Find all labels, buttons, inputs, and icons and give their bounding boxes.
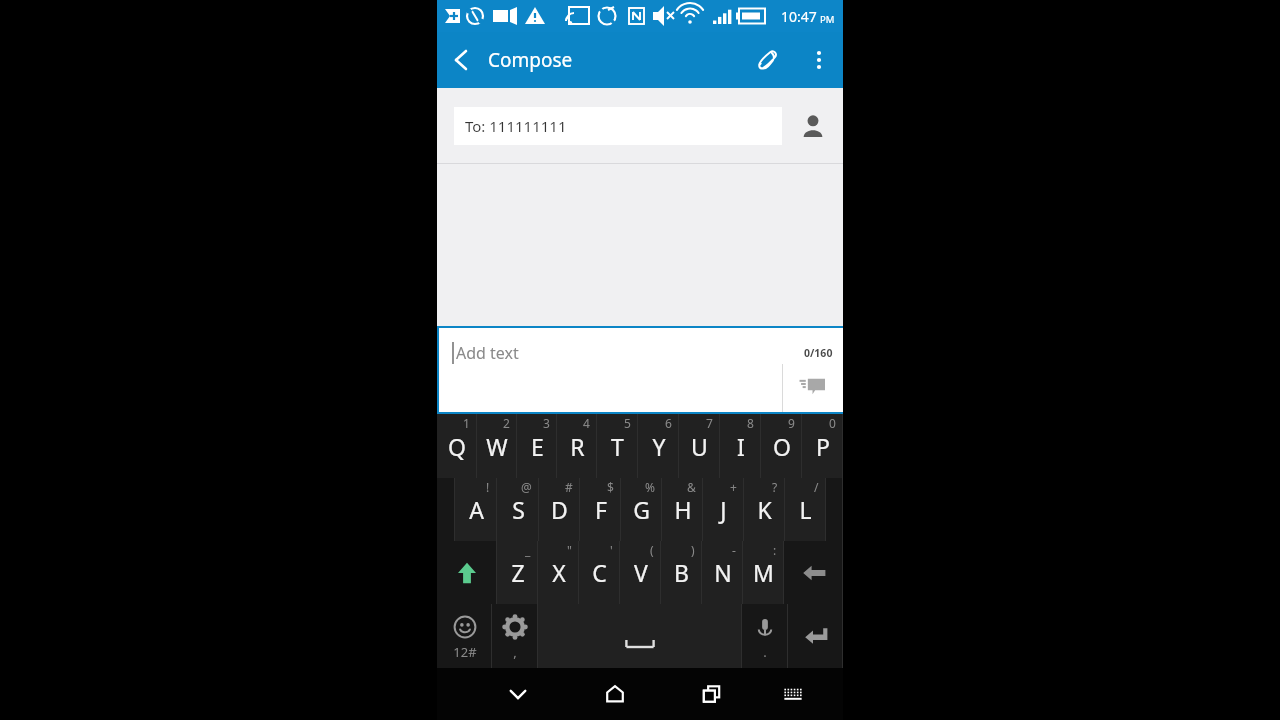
button[interactable]: K: [744, 478, 785, 541]
staticText: M: [753, 557, 774, 588]
staticText: 0/160: [804, 346, 833, 360]
button[interactable]: F: [580, 478, 621, 541]
staticText: B: [674, 557, 689, 588]
staticText: P: [816, 431, 830, 462]
staticText: C: [592, 557, 607, 588]
button[interactable]: N: [702, 541, 743, 604]
staticText: G: [633, 494, 650, 525]
button[interactable]: U: [679, 414, 720, 478]
staticText: N: [714, 557, 732, 588]
staticText: 8: [747, 415, 754, 431]
staticText: X: [552, 557, 566, 588]
button[interactable]: Keyboard switcher: [767, 668, 818, 720]
button[interactable]: Y: [638, 414, 679, 478]
button[interactable]: ,: [492, 604, 538, 668]
staticText: /: [814, 479, 819, 495]
button[interactable]: B: [661, 541, 702, 604]
button[interactable]: T: [597, 414, 638, 478]
staticText: $: [607, 479, 614, 495]
staticText: ,: [513, 643, 517, 661]
staticText: 3: [543, 415, 550, 431]
staticText: S: [512, 494, 525, 525]
button[interactable]: Send: [789, 362, 835, 408]
staticText: 1: [463, 415, 470, 431]
button[interactable]: More options: [795, 36, 843, 84]
staticText: 5: [624, 415, 631, 431]
button[interactable]: [784, 541, 843, 604]
staticText: O: [773, 431, 791, 462]
button[interactable]: Q: [437, 414, 477, 478]
button[interactable]: Recent apps: [686, 668, 737, 720]
staticText: ': [610, 542, 613, 558]
staticText: Add text: [456, 342, 519, 364]
button[interactable]: 12#: [437, 604, 492, 668]
staticText: W: [486, 431, 508, 462]
staticText: -: [732, 542, 736, 558]
button[interactable]: W: [477, 414, 517, 478]
button[interactable]: [788, 604, 843, 668]
staticText: T: [611, 431, 624, 462]
button[interactable]: Hide keyboard: [492, 668, 543, 720]
staticText: .: [763, 643, 767, 661]
staticText: F: [595, 494, 607, 525]
button[interactable]: L: [785, 478, 826, 541]
button[interactable]: D: [539, 478, 580, 541]
staticText: E: [531, 431, 544, 462]
staticText: _: [525, 542, 531, 558]
staticText: 6: [665, 415, 672, 431]
staticText: +: [730, 479, 737, 495]
button[interactable]: C: [579, 541, 620, 604]
button[interactable]: E: [517, 414, 557, 478]
staticText: ": [567, 542, 572, 558]
staticText: J: [720, 494, 727, 525]
button[interactable]: [826, 478, 843, 541]
button[interactable]: S: [497, 478, 539, 541]
staticText: 12#: [453, 643, 477, 661]
staticText: H: [674, 494, 692, 525]
button[interactable]: To: 111111111: [454, 107, 782, 145]
button[interactable]: [437, 541, 497, 604]
button[interactable]: J: [703, 478, 744, 541]
staticText: 4: [583, 415, 590, 431]
button[interactable]: A: [455, 478, 497, 541]
button[interactable]: R: [557, 414, 597, 478]
staticText: U: [691, 431, 708, 462]
staticText: R: [570, 431, 585, 462]
staticText: PM: [820, 13, 835, 26]
button[interactable]: H: [662, 478, 703, 541]
button[interactable]: G: [621, 478, 662, 541]
staticText: 9: [788, 415, 795, 431]
button[interactable]: I: [720, 414, 761, 478]
button[interactable]: Add text: [439, 328, 843, 412]
staticText: To: 111111111: [465, 116, 567, 136]
staticText: 2: [503, 415, 510, 431]
staticText: (: [650, 542, 654, 558]
staticText: Z: [511, 557, 525, 588]
staticText: !: [486, 479, 490, 495]
button[interactable]: Z: [497, 541, 538, 604]
button[interactable]: O: [761, 414, 802, 478]
staticText: ): [691, 542, 695, 558]
staticText: 0: [829, 415, 836, 431]
staticText: :: [773, 542, 777, 558]
button[interactable]: [437, 478, 455, 541]
button[interactable]: P: [802, 414, 843, 478]
button[interactable]: .: [742, 604, 788, 668]
button[interactable]: V: [620, 541, 661, 604]
staticText: ?: [772, 479, 778, 495]
staticText: #: [565, 479, 573, 495]
staticText: Y: [652, 431, 666, 462]
button[interactable]: X: [538, 541, 579, 604]
staticText: I: [737, 431, 745, 462]
button[interactable]: M: [743, 541, 784, 604]
button[interactable]: Home: [589, 668, 640, 720]
button[interactable]: Attach: [743, 36, 791, 84]
staticText: 7: [706, 415, 713, 431]
button[interactable]: [538, 604, 742, 668]
button[interactable]: Pick contact: [791, 104, 835, 148]
staticText: D: [551, 494, 568, 525]
staticText: K: [757, 494, 772, 525]
button[interactable]: Back: [437, 36, 485, 84]
staticText: Compose: [488, 47, 573, 73]
staticText: Q: [448, 431, 466, 462]
